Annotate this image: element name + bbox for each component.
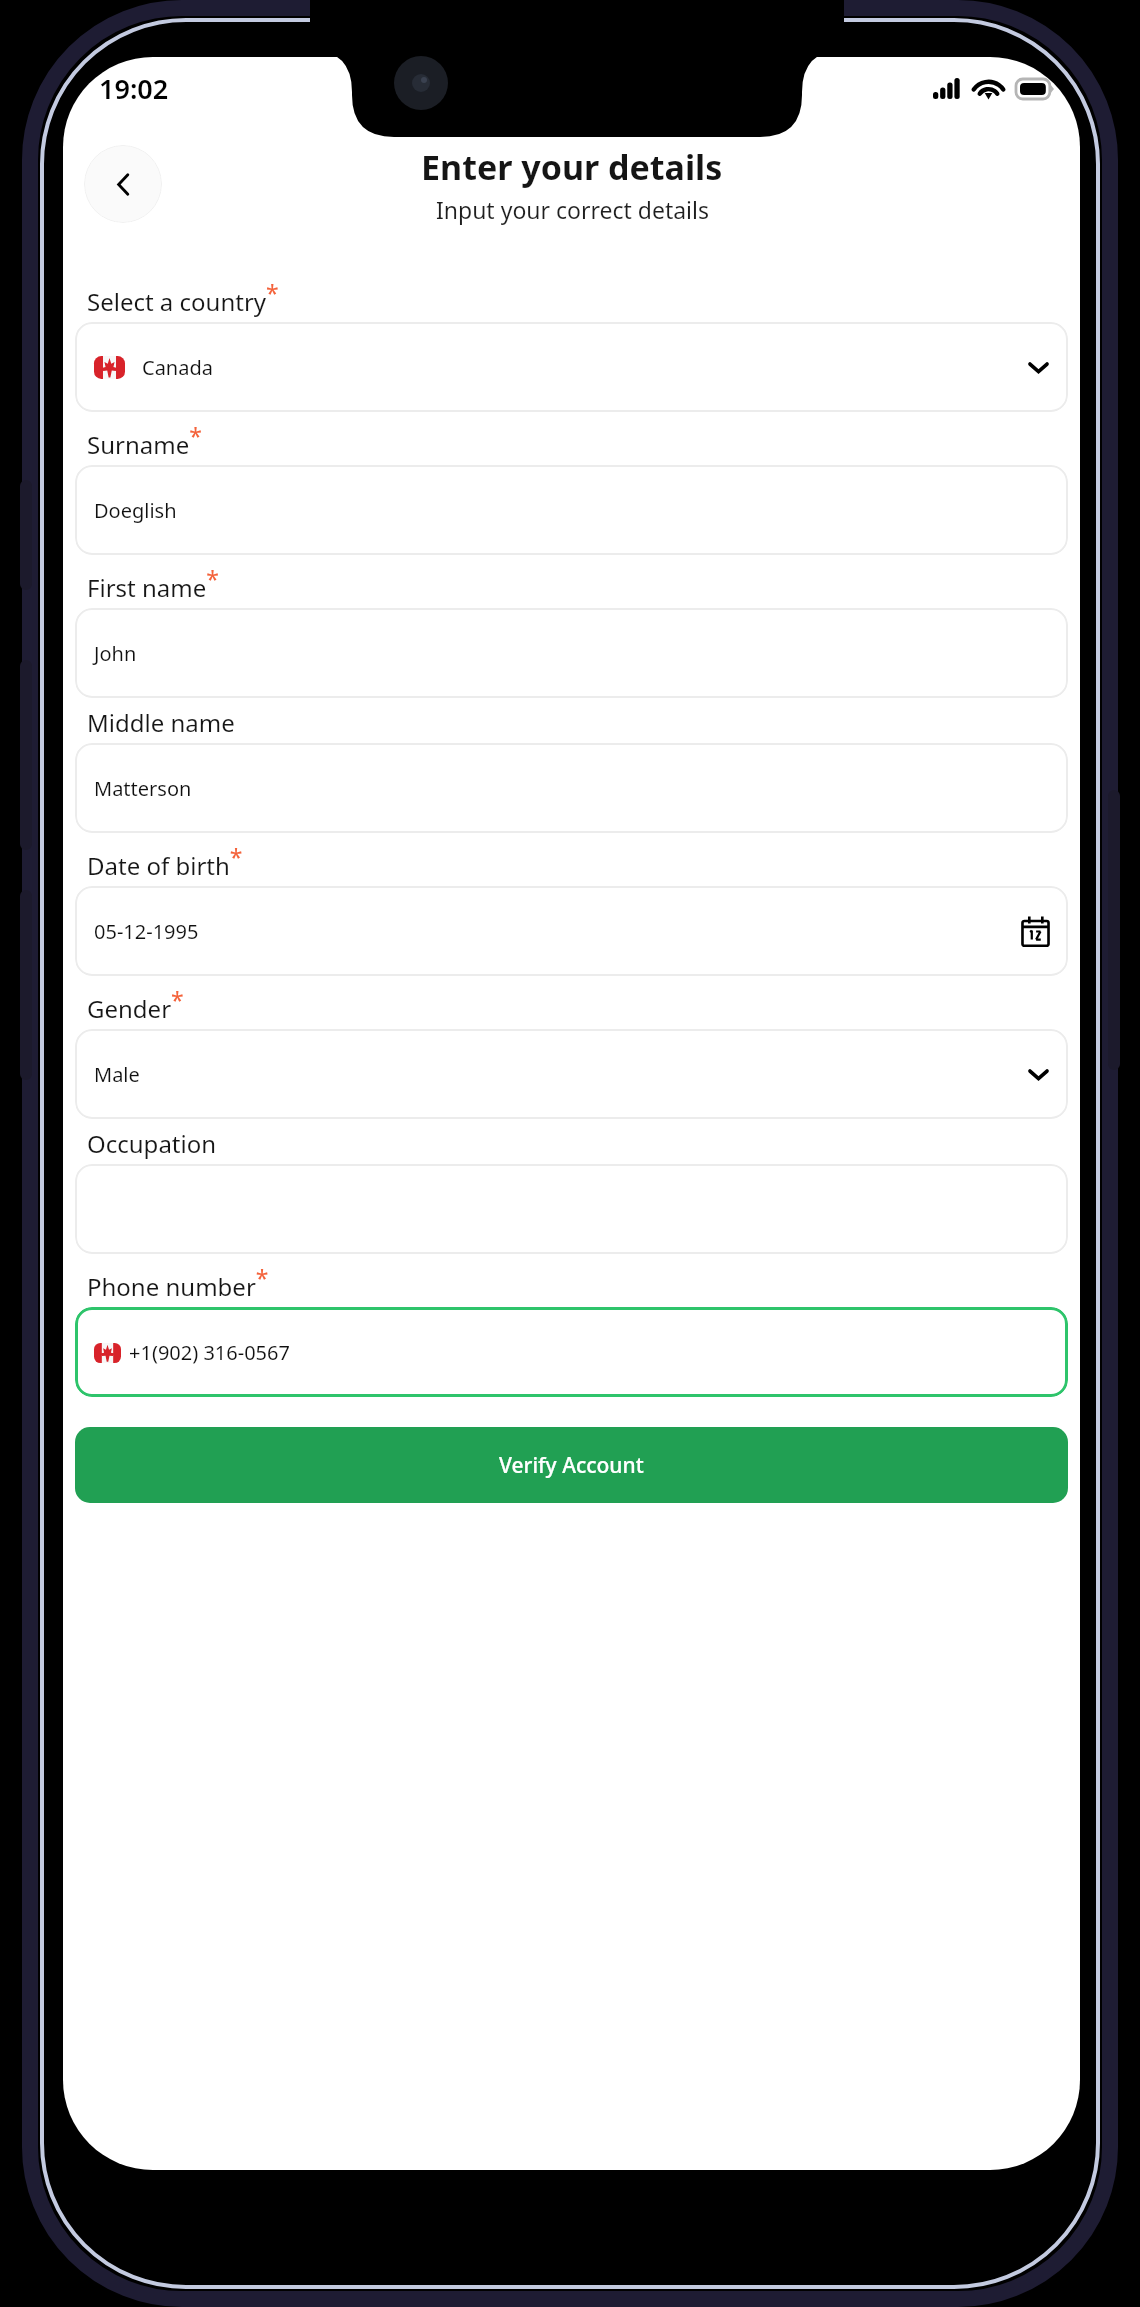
staticText: Select a country* (87, 277, 279, 318)
staticText: +1(902) 316-0567 (129, 1339, 290, 1366)
button[interactable]: Doeglish (75, 465, 1068, 555)
button[interactable]: 05-12-1995 (75, 886, 1068, 976)
staticText: Occupation (87, 1127, 217, 1160)
staticText: Date of birth* (87, 841, 243, 882)
staticText: Male (94, 1061, 140, 1088)
staticText: 05-12-1995 (94, 918, 199, 945)
staticText: Canada (142, 354, 213, 381)
button[interactable]: Verify Account (75, 1427, 1068, 1503)
button[interactable]: Matterson (75, 743, 1068, 833)
button[interactable]: +1(902) 316-0567 (75, 1307, 1068, 1397)
button[interactable]: Male (75, 1029, 1068, 1119)
staticText: Surname* (87, 420, 202, 461)
staticText: Matterson (94, 775, 192, 802)
staticText: John (94, 640, 137, 667)
staticText: First name* (87, 563, 219, 604)
staticText: Input your correct details (436, 194, 709, 225)
button[interactable]: Canada (75, 322, 1068, 412)
staticText: Gender* (87, 984, 184, 1025)
staticText: Enter your details (421, 144, 723, 190)
staticText: Doeglish (94, 497, 177, 524)
button[interactable]: Back (84, 145, 162, 223)
staticText: Verify Account (499, 1451, 644, 1480)
staticText: Middle name (87, 706, 235, 739)
button[interactable] (75, 1164, 1068, 1254)
staticText: 19:02 (99, 70, 169, 107)
staticText: Phone number* (87, 1262, 269, 1303)
button[interactable]: John (75, 608, 1068, 698)
